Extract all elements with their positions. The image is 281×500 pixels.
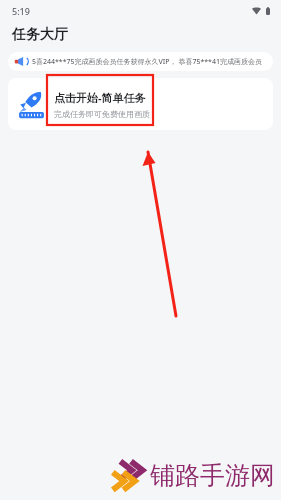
staticText: 5:19 — [12, 5, 30, 17]
staticText: 铺路手游网 — [150, 460, 275, 491]
staticText: 完成任务即可免费使用画质 — [54, 109, 150, 119]
other: 任务图标 — [16, 89, 47, 120]
button[interactable]: 公告 — [8, 52, 273, 71]
staticText: 任务大厅 — [12, 26, 68, 44]
staticText: 5喜244***75完成画质会员任务获得永久VIP， 恭喜75***41完成画质… — [32, 57, 267, 67]
staticText: 点击开始-简单任务 — [54, 90, 146, 105]
other: 公告 — [14, 56, 27, 67]
button[interactable]: 任务图标 — [8, 78, 273, 130]
